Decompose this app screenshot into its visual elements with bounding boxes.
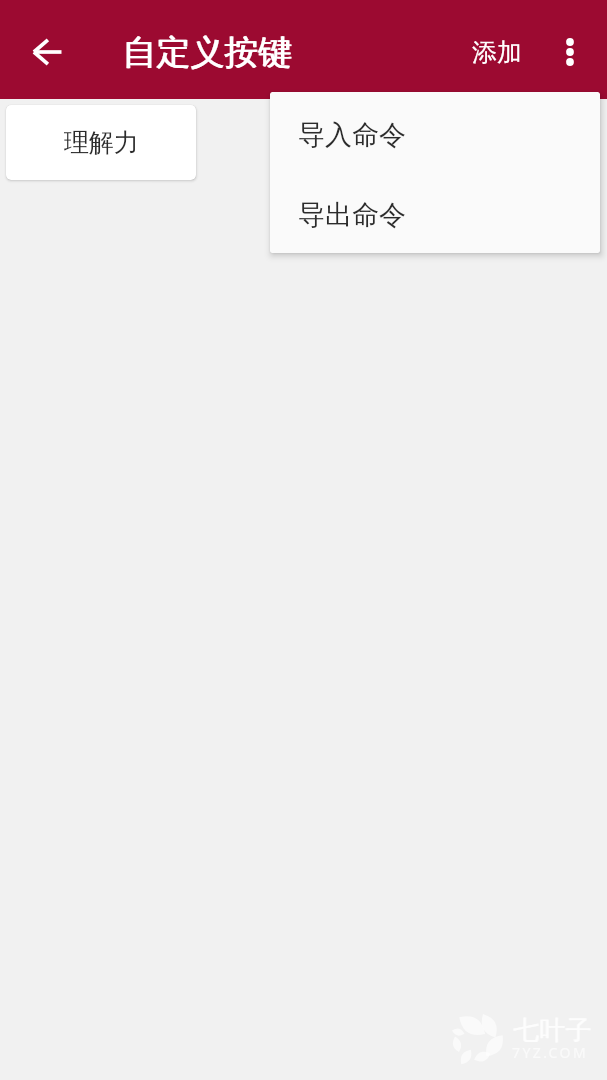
staticText: 导出命令: [298, 198, 406, 232]
staticText: 七叶子: [513, 1014, 591, 1047]
button[interactable]: Back: [19, 24, 75, 80]
button[interactable]: 导出命令: [270, 172, 600, 252]
staticText: 理解力: [64, 127, 139, 158]
button[interactable]: 理解力: [6, 105, 196, 180]
staticText: 自定义按键: [122, 31, 292, 74]
button[interactable]: 导入命令: [270, 92, 600, 172]
staticText: 自定义按键: [123, 31, 293, 74]
button[interactable]: 添加: [458, 25, 536, 80]
staticText: 七叶子: [514, 1014, 592, 1047]
staticText: 导入命令: [298, 118, 406, 152]
button[interactable]: More options: [546, 28, 594, 76]
staticText: 添加: [472, 37, 522, 68]
